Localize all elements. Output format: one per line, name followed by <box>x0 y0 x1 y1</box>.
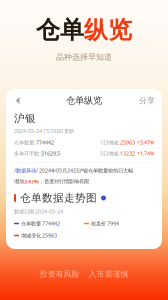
staticText: 分享 <box>139 96 155 105</box>
staticText: 仓单 <box>36 15 84 45</box>
staticText: 品种选择早知道 <box>56 52 112 62</box>
staticText: 2024-05-24 15:10:00 更新 <box>14 127 74 135</box>
staticText: 2024年05月24日沪银仓单数量较前日大幅 <box>39 167 133 174</box>
staticText: 仓单数量 774442 <box>21 220 60 227</box>
staticText: 收盘价 7994 <box>91 220 119 227</box>
staticText: 沪银 <box>14 112 36 125</box>
staticText: 增加 <box>14 178 24 185</box>
staticText: 51629.5 <box>41 150 60 157</box>
staticText: 仓单数量: <box>14 139 36 146</box>
staticText: 数据日期 2024-05-24 <box>14 208 63 215</box>
staticText: 投资有风险 <box>39 269 79 279</box>
staticText: 入市需谨慎 <box>88 269 128 279</box>
staticText: 纵览 <box>84 15 132 45</box>
staticText: 5日增减: <box>100 150 120 157</box>
staticText: 3.47% <box>24 178 39 185</box>
staticText: 25963 <box>120 139 135 146</box>
staticText: 1日增减: <box>100 139 120 146</box>
button[interactable]: 分享 <box>132 90 162 110</box>
staticText: 13232 <box>120 150 135 157</box>
staticText: 774442 <box>36 139 54 146</box>
staticText: 仓单纵览 <box>66 95 102 106</box>
button[interactable]: 返回 <box>6 90 30 110</box>
staticText: /数据异动/ <box>14 167 39 174</box>
staticText: ，首度对行情影响有限 <box>39 178 89 185</box>
staticText: 多单开手数: <box>14 150 41 157</box>
staticText: +1.74% <box>135 150 154 157</box>
staticText: +3.47% <box>135 139 154 146</box>
staticText: 增减变化 25963 <box>21 232 57 239</box>
staticText: 仓单数据走势图 <box>20 191 97 204</box>
